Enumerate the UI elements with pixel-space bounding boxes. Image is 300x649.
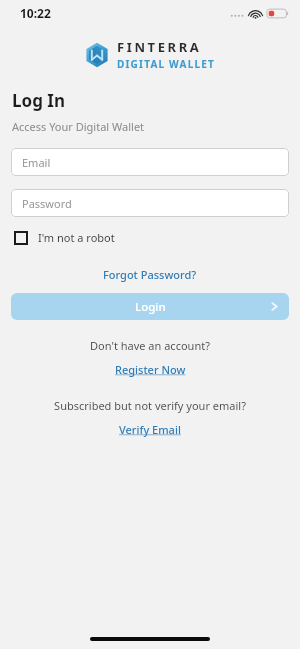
button[interactable]: Email xyxy=(11,148,289,176)
button[interactable]: I'm not a robot xyxy=(12,228,117,247)
staticText: 10:22 xyxy=(20,5,51,21)
staticText: Password xyxy=(22,196,72,211)
button[interactable]: Password xyxy=(11,189,289,217)
button[interactable]: Login xyxy=(11,293,289,320)
button[interactable]: Verify Email xyxy=(113,420,187,439)
staticText: Access Your Digital Wallet xyxy=(12,119,145,134)
staticText: Email xyxy=(22,155,51,170)
button[interactable]: Forgot Password? xyxy=(97,265,203,284)
button[interactable]: Register Now xyxy=(109,360,192,379)
staticText: Don't have an account? xyxy=(90,338,210,353)
staticText: I'm not a robot xyxy=(38,230,115,245)
staticText: Login xyxy=(135,299,166,315)
staticText: Log In xyxy=(12,89,65,112)
staticText: Subscribed but not verify your email? xyxy=(54,398,246,413)
staticText: DIGITAL WALLET xyxy=(117,57,216,71)
staticText: FINTERRA xyxy=(117,38,202,56)
